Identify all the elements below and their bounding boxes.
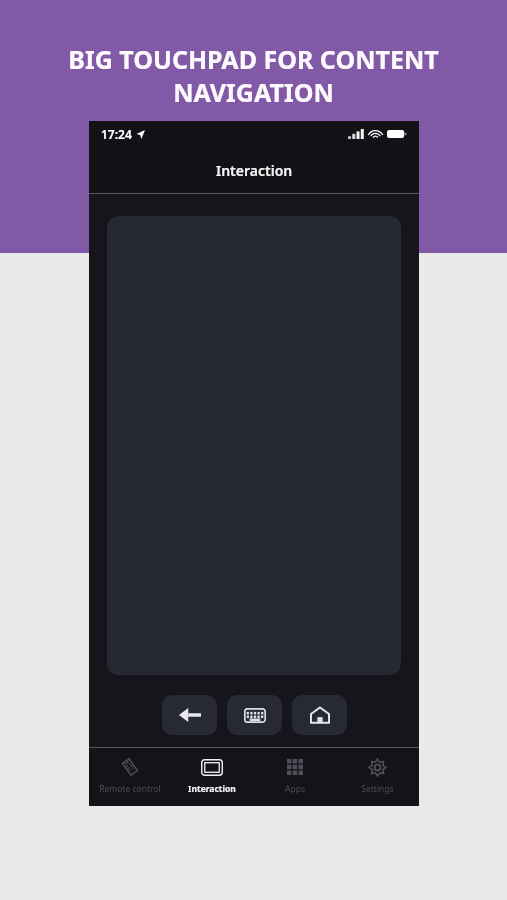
staticText: BIG TOUCHPAD FOR CONTENT NAVIGATION <box>24 42 483 109</box>
staticText: 17:24 <box>101 126 132 142</box>
button[interactable]: Apps <box>253 748 336 806</box>
staticText: Interaction <box>188 783 236 795</box>
button[interactable]: Keyboard <box>227 695 282 735</box>
button[interactable]: Back <box>162 695 217 735</box>
staticText: Remote control <box>99 783 161 795</box>
staticText: Apps <box>285 783 305 795</box>
button[interactable]: Home <box>292 695 347 735</box>
staticText: Interaction <box>216 161 293 180</box>
button[interactable]: Remote control <box>89 748 171 806</box>
staticText: Settings <box>361 783 394 795</box>
button[interactable]: Interaction <box>171 748 253 806</box>
button[interactable]: Settings <box>336 748 419 806</box>
